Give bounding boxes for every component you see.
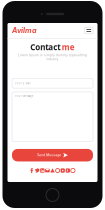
button[interactable]: Send Message [7,149,97,161]
button[interactable]: Social link [35,168,39,173]
button[interactable]: Social link [60,168,65,173]
staticText: Send Message [37,153,61,157]
staticText: Lorem Ipsum is simply dummy typesetting [18,53,87,57]
staticText: Avilma [12,26,37,35]
button[interactable]: Social link [50,168,55,173]
staticText: me [62,42,75,52]
staticText: Your E-mail [15,82,31,85]
button[interactable]: Menu [85,27,93,34]
staticText: Contact [30,42,60,52]
button[interactable]: Social link [30,168,34,173]
button[interactable]: Social link [71,168,75,173]
button[interactable]: Social link [45,168,50,173]
staticText: industry. [45,57,59,61]
button[interactable]: Social link [55,168,60,173]
staticText: Your Message [15,94,34,98]
button[interactable]: Social link [65,168,70,173]
button[interactable]: Social link [40,168,45,173]
